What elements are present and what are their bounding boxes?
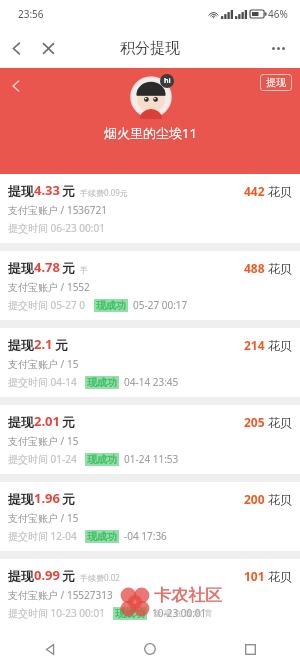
button[interactable]: Back xyxy=(0,70,32,102)
staticText: 提交时间 05-27 0 xyxy=(8,298,86,312)
staticText: 1.96 xyxy=(34,489,60,507)
staticText: 442 xyxy=(244,183,265,199)
staticText: 提现 xyxy=(266,76,286,89)
staticText: 提交时间 12-04 xyxy=(8,529,77,543)
staticText: 支付宝账户 / 1536721 xyxy=(8,203,107,217)
staticText: 积分提现 xyxy=(120,39,180,58)
staticText: 现成功 xyxy=(87,376,117,389)
staticText: 元 xyxy=(62,260,75,276)
button[interactable]: 提现 xyxy=(0,174,300,243)
staticText: 提交时间 06-23 00:01 xyxy=(8,221,105,235)
button[interactable]: Close xyxy=(32,32,64,64)
button[interactable]: 提现 xyxy=(0,328,300,397)
button[interactable]: Recent apps xyxy=(200,632,300,666)
staticText: 提现 xyxy=(8,414,34,430)
staticText: 提现 xyxy=(8,491,34,507)
staticText: 元 xyxy=(62,568,75,584)
staticText: 提交时间 01-24 xyxy=(8,452,77,466)
staticText: 支付宝账户 / 15 xyxy=(8,357,79,371)
staticText: hi xyxy=(164,76,171,86)
staticText: 元 xyxy=(62,183,75,199)
button[interactable]: More options xyxy=(262,32,294,64)
button[interactable]: 提现 xyxy=(0,559,300,628)
staticText: 提现 xyxy=(8,260,34,276)
staticText: 花贝 xyxy=(268,338,292,353)
staticText: 0.99 xyxy=(34,566,60,584)
button[interactable]: 提现 xyxy=(0,482,300,551)
staticText: 元 xyxy=(55,337,68,353)
staticText: 4.33 xyxy=(34,181,60,199)
staticText: 现成功 xyxy=(115,607,145,620)
staticText: 花贝 xyxy=(268,261,292,276)
staticText: 214 xyxy=(244,337,265,353)
staticText: 200 xyxy=(244,491,265,507)
staticText: 金 融 在 线 教 育 xyxy=(154,607,213,618)
staticText: 2.01 xyxy=(34,412,60,430)
staticText: 现成功 xyxy=(87,453,117,466)
staticText: 488 xyxy=(244,260,265,276)
staticText: 提交时间 10-23 00:01 xyxy=(8,606,105,620)
staticText: 支付宝账户 / 15527313 xyxy=(8,588,113,602)
staticText: 手续费0.02 xyxy=(80,572,120,583)
staticText: 手 xyxy=(80,265,88,275)
staticText: -04 17:36 xyxy=(124,529,167,543)
staticText: 01-24 11:53 xyxy=(124,452,179,466)
button[interactable]: 提现 xyxy=(260,74,292,91)
staticText: 101 xyxy=(244,568,265,584)
staticText: 烟火里的尘埃11 xyxy=(104,124,197,142)
staticText: 提现 xyxy=(8,183,34,199)
button[interactable]: 提现 xyxy=(0,405,300,474)
staticText: 05-27 00:17 xyxy=(133,298,188,312)
staticText: 提现 xyxy=(8,337,34,353)
staticText: 23:56 xyxy=(18,7,44,21)
staticText: 支付宝账户 / 15 xyxy=(8,434,79,448)
staticText: 205 xyxy=(244,414,265,430)
staticText: 花贝 xyxy=(268,569,292,584)
staticText: 提交时间 04-14 xyxy=(8,375,77,389)
staticText: 现成功 xyxy=(87,530,117,543)
staticText: 花贝 xyxy=(268,184,292,199)
staticText: 10-23 00:01 xyxy=(152,606,207,620)
staticText: 卡农社区 xyxy=(154,585,222,606)
staticText: 花贝 xyxy=(268,415,292,430)
staticText: 46% xyxy=(268,7,288,21)
staticText: 手续费0.09元 xyxy=(80,187,128,198)
button[interactable]: Back xyxy=(0,32,32,64)
button[interactable]: Back xyxy=(0,632,100,666)
button[interactable]: 提现 xyxy=(0,251,300,320)
staticText: 元 xyxy=(62,414,75,430)
staticText: 支付宝账户 / 15 xyxy=(8,511,79,525)
staticText: 04-14 23:45 xyxy=(124,375,179,389)
button[interactable]: Home xyxy=(100,632,200,666)
staticText: 现成功 xyxy=(96,299,126,312)
staticText: 4.78 xyxy=(34,258,60,276)
staticText: 提现 xyxy=(8,568,34,584)
staticText: 支付宝账户 / 1552 xyxy=(8,280,90,294)
staticText: 元 xyxy=(62,491,75,507)
staticText: 2.1 xyxy=(34,335,53,353)
staticText: 花贝 xyxy=(268,492,292,507)
